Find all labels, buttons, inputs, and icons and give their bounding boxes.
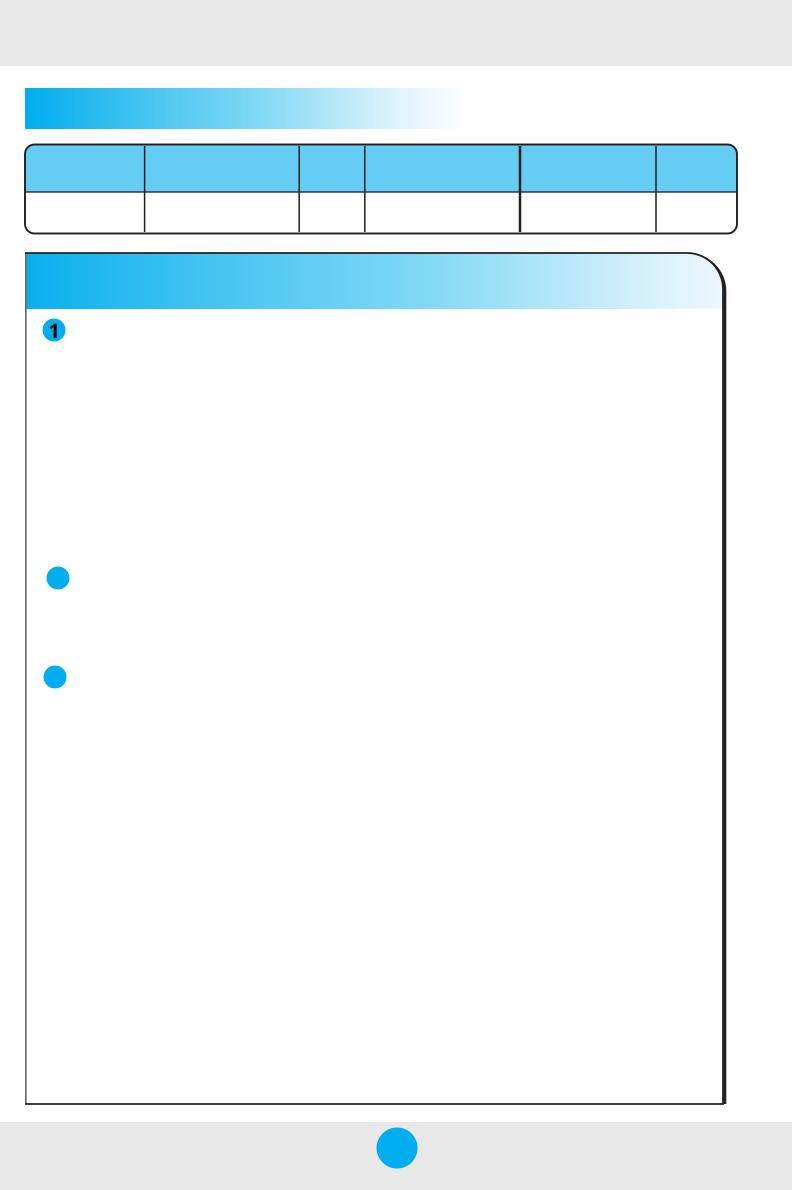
staticText: 1 bbox=[48, 317, 59, 343]
button[interactable]: Step 2 bbox=[46, 566, 69, 589]
button[interactable]: Step 1 bbox=[42, 318, 65, 341]
button[interactable]: Step 3 bbox=[43, 665, 66, 688]
button[interactable]: Page number bbox=[376, 1127, 417, 1168]
